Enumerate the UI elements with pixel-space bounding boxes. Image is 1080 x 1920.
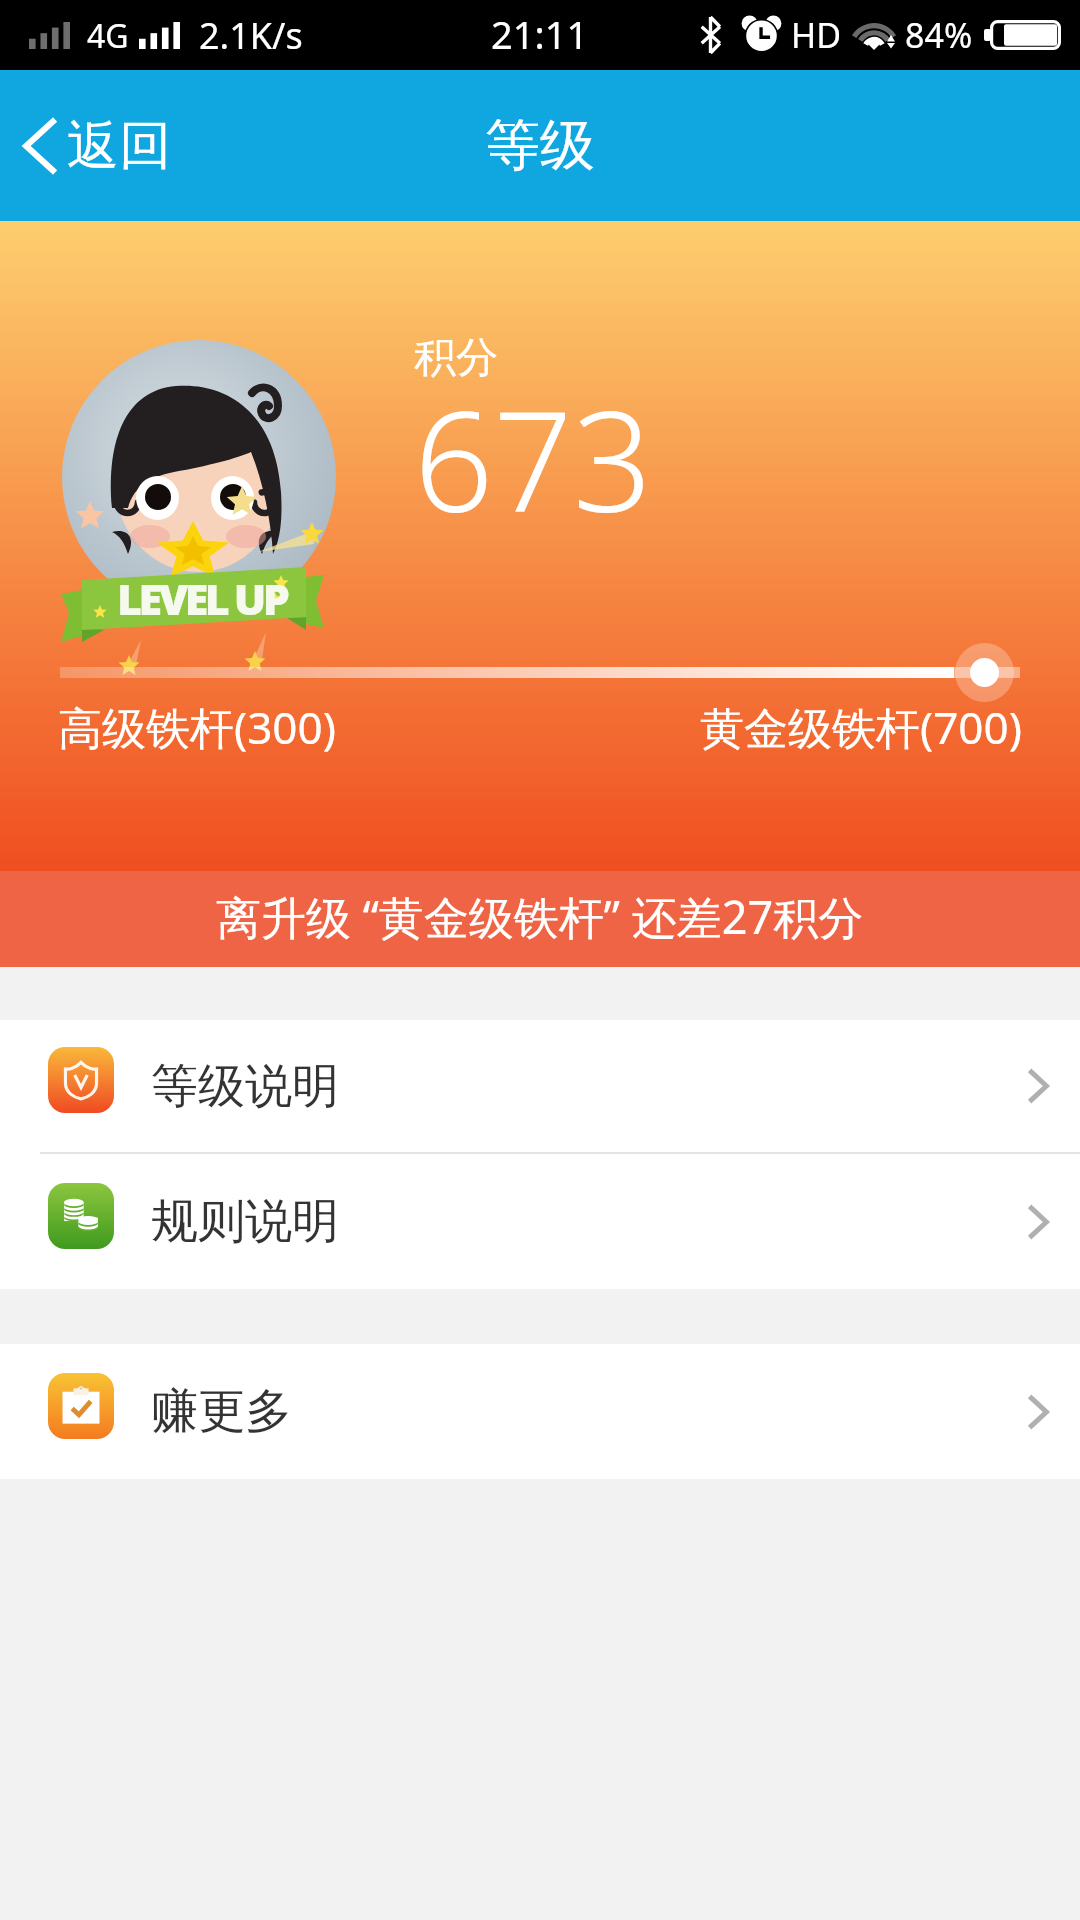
- staticText: 规则说明: [151, 1192, 339, 1251]
- staticText: 4G: [87, 14, 129, 58]
- staticText: 黄金级铁杆(700): [700, 697, 1022, 757]
- staticText: 赚更多: [151, 1382, 292, 1441]
- staticText: LEVEL UP: [117, 569, 287, 628]
- staticText: 673: [414, 363, 653, 552]
- staticText: HD: [791, 12, 842, 58]
- staticText: 高级铁杆(300): [58, 697, 336, 757]
- staticText: 积分: [414, 332, 498, 385]
- button[interactable]: 赚更多: [0, 1344, 1080, 1479]
- staticText: 离升级 “黄金级铁杆” 还差27积分: [216, 886, 864, 947]
- staticText: 2.1K/s: [199, 11, 303, 60]
- staticText: 84%: [905, 12, 973, 58]
- button[interactable]: 规则说明: [0, 1154, 1080, 1289]
- staticText: 等级说明: [151, 1057, 339, 1116]
- staticText: 返回: [67, 113, 171, 179]
- button[interactable]: 返回: [0, 93, 195, 199]
- staticText: 等级: [485, 111, 595, 180]
- staticText: 21:11: [491, 8, 589, 60]
- button[interactable]: 等级说明: [0, 1020, 1080, 1152]
